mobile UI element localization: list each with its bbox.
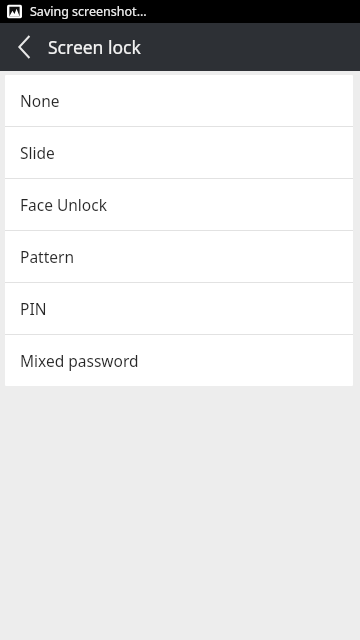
button[interactable]: Slide <box>5 127 353 178</box>
staticText: Mixed password <box>20 350 139 371</box>
staticText: Saving screenshot... <box>30 3 147 20</box>
button[interactable]: PIN <box>5 283 353 334</box>
staticText: Face Unlock <box>20 194 107 215</box>
staticText: PIN <box>20 298 47 319</box>
button[interactable]: None <box>5 75 353 126</box>
staticText: Slide <box>20 142 55 163</box>
staticText: Pattern <box>20 246 74 267</box>
button[interactable]: Face Unlock <box>5 179 353 230</box>
button[interactable]: Back <box>0 23 48 71</box>
staticText: None <box>20 90 60 111</box>
button[interactable]: Pattern <box>5 231 353 282</box>
staticText: Screen lock <box>48 35 141 59</box>
button[interactable]: Mixed password <box>5 335 353 386</box>
